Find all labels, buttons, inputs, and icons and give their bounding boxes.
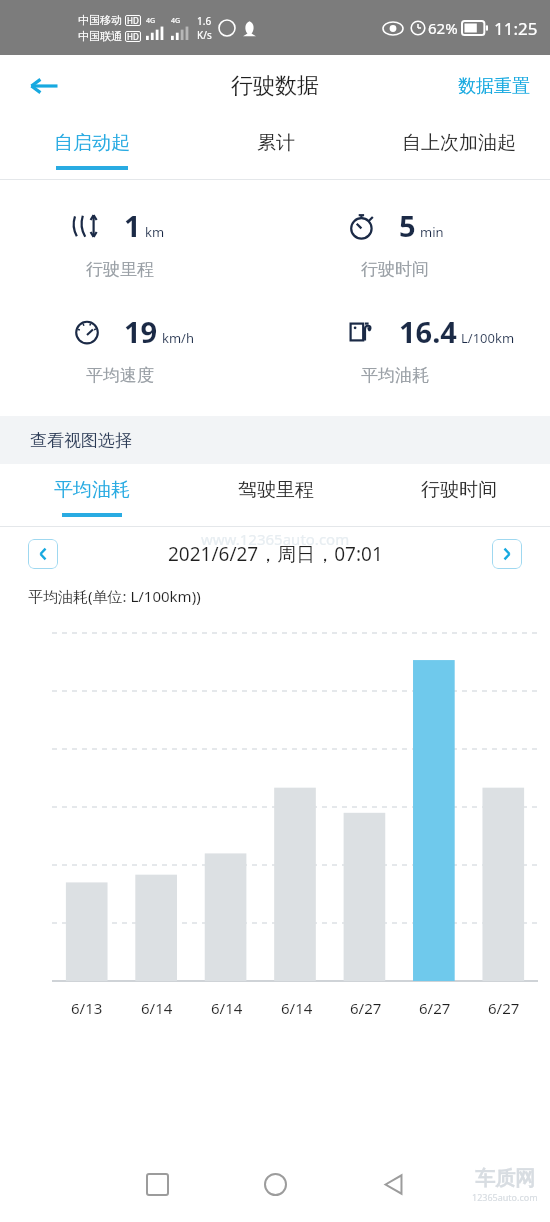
button[interactable]: Home — [244, 1153, 306, 1215]
staticText: 行驶里程 — [86, 259, 154, 280]
staticText: 中国移动 — [78, 13, 122, 27]
staticText: 行驶时间 — [361, 259, 429, 280]
button[interactable]: 行驶时间 — [367, 464, 550, 513]
staticText: 11:25 — [494, 17, 538, 40]
staticText: 6/14 — [211, 998, 243, 1018]
staticText: 19 — [124, 312, 158, 351]
staticText: 4G — [146, 16, 156, 26]
staticText: 平均油耗 — [54, 478, 130, 502]
staticText: min — [420, 223, 444, 241]
staticText: 查看视图选择 — [30, 430, 132, 451]
button[interactable]: 平均油耗 — [0, 464, 184, 517]
staticText: 中国联通 — [78, 29, 122, 43]
staticText: 数据重置 — [458, 75, 530, 98]
button[interactable]: Previous — [28, 539, 58, 569]
staticText: 平均速度 — [86, 365, 154, 386]
staticText: 4G — [171, 16, 181, 26]
staticText: 累计 — [257, 131, 295, 155]
staticText: 1 — [124, 206, 141, 245]
button[interactable]: Recents — [126, 1153, 188, 1215]
staticText: 5 — [399, 206, 416, 245]
staticText: 自启动起 — [54, 131, 130, 155]
staticText: 1.6 — [197, 14, 212, 28]
staticText: 6/27 — [419, 998, 451, 1018]
staticText: 行驶时间 — [421, 478, 497, 502]
button[interactable]: Back — [18, 60, 70, 112]
staticText: 车质网 — [475, 1166, 535, 1191]
staticText: 6/27 — [350, 998, 382, 1018]
staticText: 2021/6/27，周日，07:01 — [168, 541, 383, 567]
staticText: 平均油耗(单位: L/100km)) — [28, 586, 201, 606]
staticText: km — [145, 223, 165, 241]
staticText: 16.4 — [399, 312, 457, 351]
staticText: 6/14 — [281, 998, 313, 1018]
button[interactable]: 自上次加油起 — [367, 117, 550, 166]
staticText: km/h — [162, 329, 194, 347]
staticText: 12365auto.com — [472, 1191, 538, 1203]
staticText: 平均油耗 — [361, 365, 429, 386]
staticText: HD — [127, 31, 139, 42]
button[interactable]: 驾驶里程 — [184, 464, 367, 513]
staticText: L/100km — [461, 329, 515, 347]
button[interactable]: Next — [492, 539, 522, 569]
staticText: 6/14 — [141, 998, 173, 1018]
staticText: 6/27 — [488, 998, 520, 1018]
button[interactable]: 累计 — [184, 117, 367, 166]
staticText: 62% — [428, 18, 458, 38]
staticText: 6/13 — [71, 998, 103, 1018]
staticText: 驾驶里程 — [238, 478, 314, 502]
staticText: HD — [127, 15, 139, 26]
staticText: K/s — [197, 28, 212, 42]
button[interactable]: 自启动起 — [0, 117, 184, 170]
staticText: 行驶数据 — [231, 72, 319, 100]
button[interactable]: Back — [362, 1153, 424, 1215]
button[interactable]: 数据重置 — [452, 69, 536, 104]
staticText: www.12365auto.com — [201, 529, 350, 549]
staticText: 自上次加油起 — [402, 131, 516, 155]
